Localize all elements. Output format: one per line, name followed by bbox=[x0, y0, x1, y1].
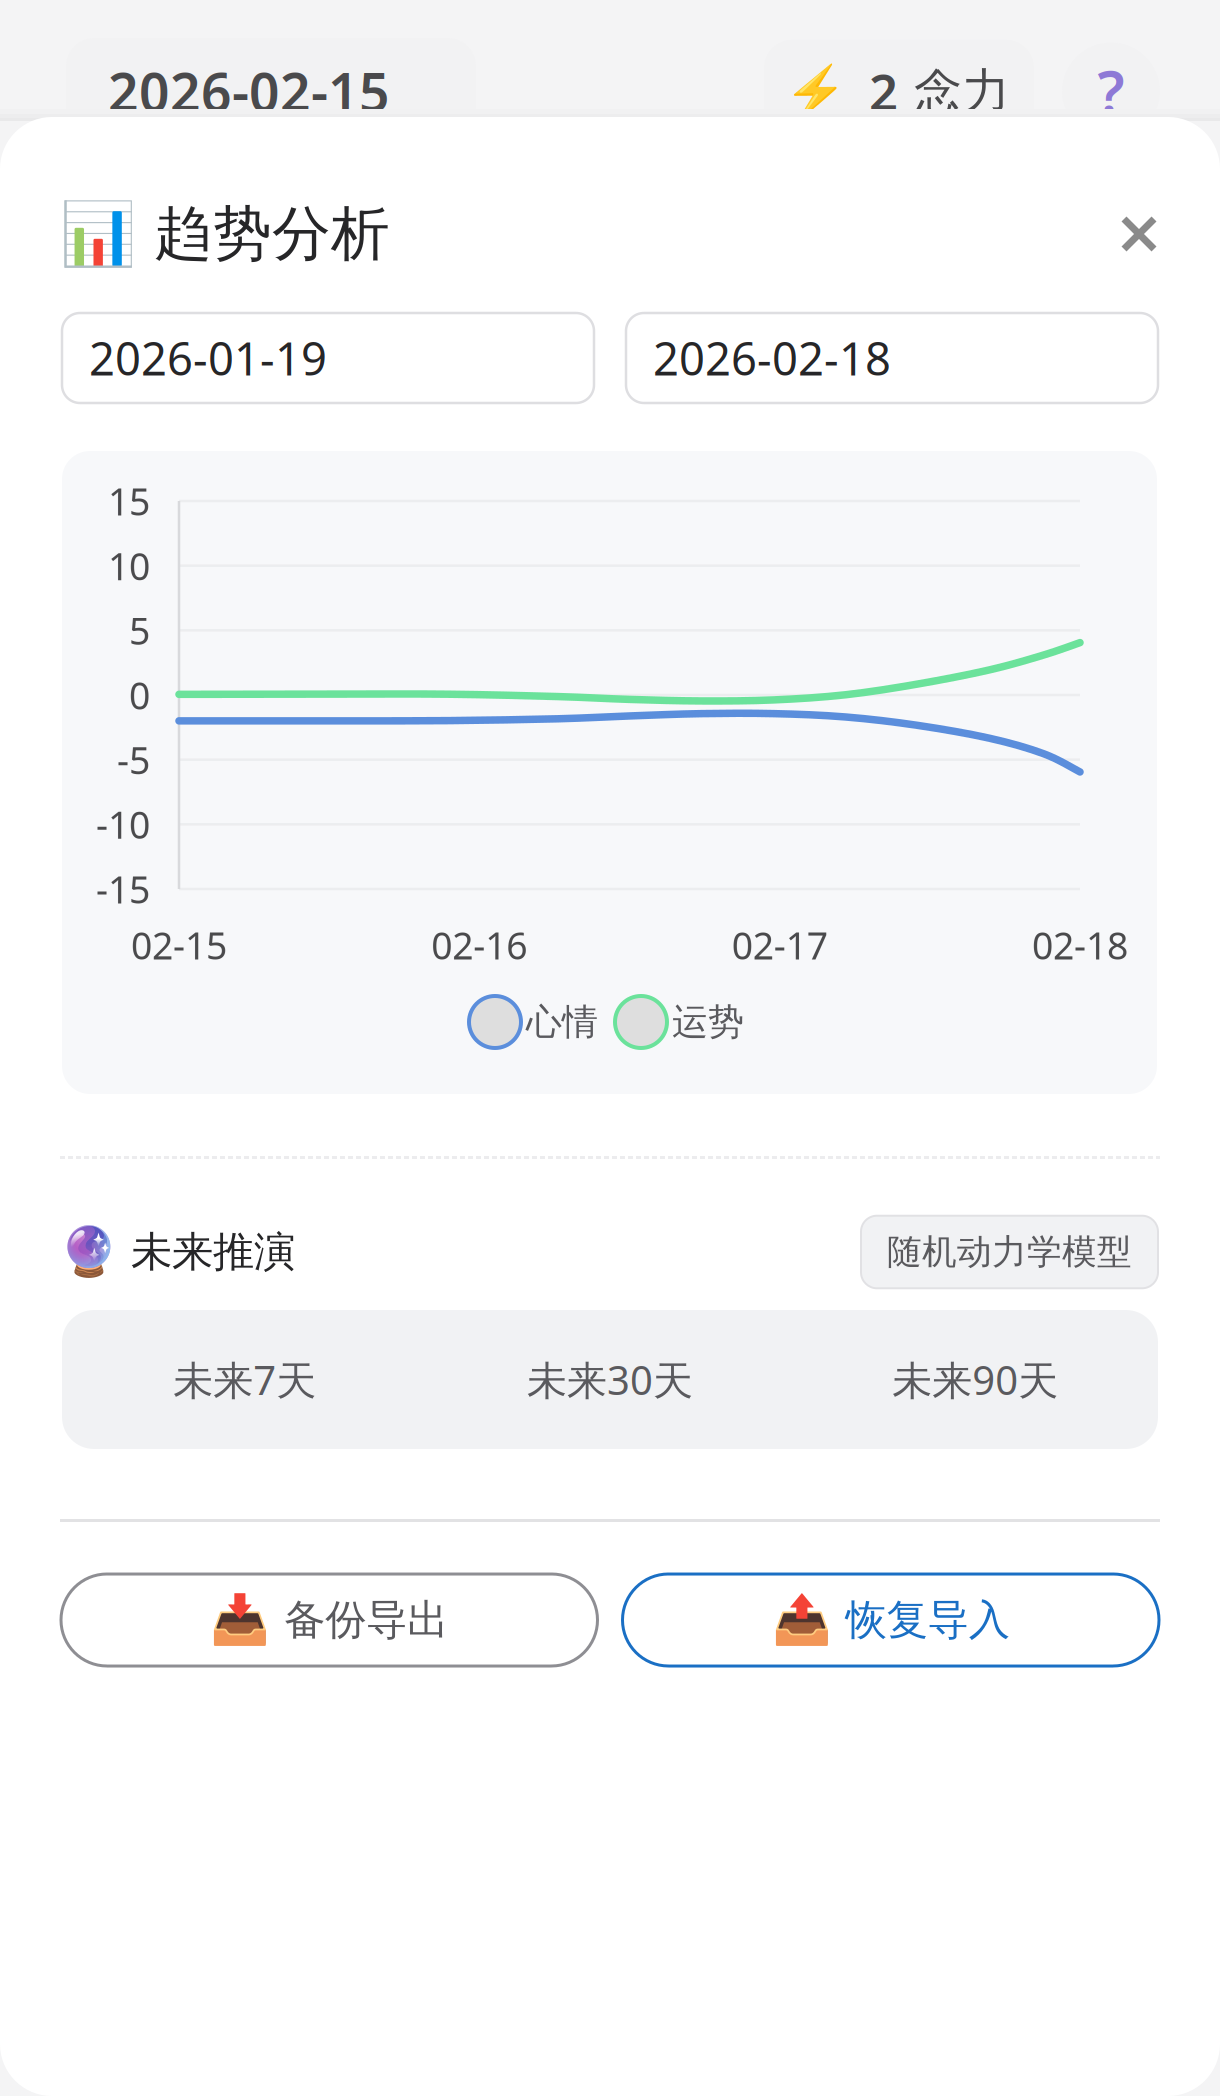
staticText: 恢复导入 bbox=[846, 1595, 1010, 1645]
staticText: 02-16 bbox=[431, 920, 527, 970]
staticText: 2026-01-19 bbox=[89, 328, 327, 388]
button[interactable]: 未来90天 bbox=[793, 1310, 1158, 1449]
button[interactable]: 2026-02-15 bbox=[66, 38, 476, 145]
staticText: -15 bbox=[96, 864, 150, 914]
button[interactable]: 关闭 bbox=[1086, 207, 1168, 261]
staticText: 📊 bbox=[60, 199, 136, 269]
staticText: 5 bbox=[129, 605, 150, 655]
staticText: 趋势分析 bbox=[154, 198, 390, 270]
button[interactable]: 2026-02-18 bbox=[626, 313, 1158, 403]
button[interactable]: 随机动力学模型 bbox=[861, 1216, 1158, 1288]
button[interactable]: 帮助 bbox=[1062, 42, 1160, 140]
staticText: 0 bbox=[129, 670, 150, 720]
staticText: 2026-02-15 bbox=[108, 56, 390, 127]
staticText: 未来90天 bbox=[892, 1353, 1058, 1406]
staticText: 15 bbox=[108, 476, 150, 526]
staticText: 未来7天 bbox=[173, 1353, 316, 1406]
staticText: 02-17 bbox=[732, 920, 828, 970]
staticText: 心情 bbox=[526, 1000, 598, 1044]
staticText: 10 bbox=[108, 541, 150, 590]
staticText: 备份导出 bbox=[284, 1595, 448, 1645]
staticText: 02-15 bbox=[131, 920, 227, 970]
button[interactable]: ⚡ bbox=[764, 40, 1034, 143]
staticText: -5 bbox=[117, 735, 150, 784]
button[interactable]: 📥 bbox=[61, 1574, 597, 1666]
staticText: ⚡ bbox=[784, 62, 847, 120]
staticText: 02-18 bbox=[1032, 920, 1128, 970]
staticText: 随机动力学模型 bbox=[887, 1231, 1132, 1273]
staticText: 运势 bbox=[672, 1000, 744, 1044]
staticText: 未来推演 bbox=[131, 1227, 295, 1277]
staticText: -10 bbox=[96, 799, 150, 849]
button[interactable]: 未来7天 bbox=[62, 1310, 427, 1449]
staticText: 2 bbox=[869, 58, 898, 125]
staticText: 2026-02-18 bbox=[653, 328, 891, 388]
staticText: ? bbox=[1097, 52, 1124, 130]
button[interactable]: 2026-01-19 bbox=[62, 313, 594, 403]
staticText: 未来30天 bbox=[527, 1353, 693, 1406]
button[interactable]: 📤 bbox=[622, 1574, 1159, 1666]
staticText: 念力 bbox=[914, 62, 1010, 121]
button[interactable]: 未来30天 bbox=[427, 1310, 793, 1449]
staticText: 🔮 bbox=[59, 1225, 119, 1279]
staticText: 📥 bbox=[210, 1593, 270, 1647]
staticText: 📤 bbox=[772, 1593, 832, 1647]
